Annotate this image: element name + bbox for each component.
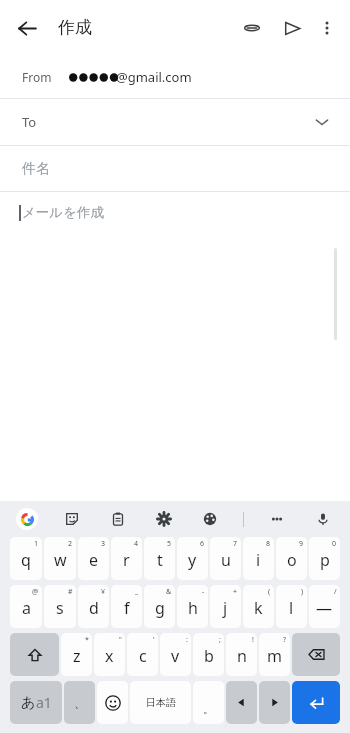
staticText: 9 (299, 539, 304, 549)
staticText: f (124, 597, 130, 619)
button[interactable]: More (264, 506, 290, 532)
staticText: " (119, 635, 122, 645)
staticText: x (105, 645, 114, 667)
staticText: 作成 (58, 17, 92, 38)
staticText: 1 (34, 539, 39, 549)
button[interactable]: a (10, 585, 42, 628)
staticText: — (316, 597, 333, 619)
button[interactable]: h (177, 585, 208, 628)
button[interactable]: メールを作成 (0, 192, 350, 501)
staticText: ? (283, 635, 287, 645)
staticText: a1 (36, 693, 52, 712)
button[interactable]: f (111, 585, 142, 628)
button[interactable]: — (309, 585, 340, 628)
staticText: o (287, 549, 297, 571)
button[interactable]: 日本語 (130, 681, 191, 724)
staticText: From (22, 69, 52, 85)
button[interactable]: y (177, 537, 208, 580)
staticText: ; (219, 635, 221, 645)
staticText: 。 (203, 702, 214, 716)
staticText: j (223, 597, 228, 619)
button[interactable]: Back (8, 9, 46, 47)
button[interactable]: Backspace (292, 633, 340, 676)
staticText: 3 (101, 539, 106, 549)
button[interactable]: z (61, 633, 92, 676)
button[interactable]: Switch input mode (10, 681, 62, 724)
staticText: - (202, 587, 205, 597)
button[interactable]: Comma (64, 681, 95, 724)
button[interactable]: Stickers (59, 506, 85, 532)
button[interactable]: Settings (151, 506, 177, 532)
staticText: 6 (200, 539, 205, 549)
button[interactable]: v (160, 633, 191, 676)
button[interactable]: Attach file (234, 10, 270, 46)
button[interactable]: Period (193, 681, 224, 724)
staticText: 5 (167, 539, 172, 549)
staticText: 、 (74, 695, 86, 710)
button[interactable]: o (276, 537, 307, 580)
button[interactable]: t (144, 537, 175, 580)
button[interactable]: w (44, 537, 76, 580)
button[interactable]: Themes (197, 506, 223, 532)
button[interactable]: Voice input (310, 506, 336, 532)
button[interactable]: Send (274, 10, 310, 46)
button[interactable]: r (111, 537, 142, 580)
button[interactable]: x (94, 633, 125, 676)
staticText: あ (21, 694, 36, 712)
staticText: ! (252, 635, 254, 645)
staticText: _ (135, 587, 139, 597)
button[interactable]: Move cursor right (259, 681, 290, 724)
button[interactable]: b (193, 633, 224, 676)
staticText: s (56, 597, 64, 619)
staticText: 2 (68, 539, 73, 549)
staticText: ' (153, 635, 155, 645)
button[interactable]: To (0, 99, 350, 145)
button[interactable]: Google (16, 508, 38, 530)
button[interactable]: q (10, 537, 42, 580)
button[interactable]: p (309, 537, 340, 580)
staticText: d (89, 597, 99, 619)
button[interactable]: e (78, 537, 109, 580)
staticText: ( (268, 587, 271, 597)
staticText: a (22, 597, 31, 619)
staticText: 7 (233, 539, 238, 549)
button[interactable]: j (210, 585, 241, 628)
staticText: / (334, 587, 337, 597)
button[interactable]: s (44, 585, 76, 628)
button[interactable]: g (144, 585, 175, 628)
staticText: p (320, 549, 330, 571)
staticText: m (267, 645, 282, 667)
staticText: c (139, 645, 147, 667)
staticText: メールを作成 (22, 204, 104, 221)
button[interactable]: i (243, 537, 274, 580)
button[interactable]: Expand recipients (308, 108, 336, 136)
staticText: @ (32, 587, 39, 597)
staticText: z (73, 645, 81, 667)
staticText: v (171, 645, 180, 667)
button[interactable]: Shift (10, 633, 59, 676)
button[interactable]: More options (310, 11, 344, 45)
staticText: 日本語 (146, 696, 176, 709)
button[interactable]: Enter (292, 681, 340, 724)
button[interactable]: d (78, 585, 109, 628)
button[interactable]: n (226, 633, 257, 676)
staticText: g (155, 597, 165, 619)
staticText: + (233, 587, 238, 597)
button[interactable]: l (276, 585, 307, 628)
button[interactable]: From (0, 55, 350, 98)
staticText: ¥ (101, 587, 106, 597)
button[interactable]: 件名 (0, 146, 350, 191)
button[interactable]: u (210, 537, 241, 580)
button[interactable]: Emoji (97, 681, 128, 724)
staticText: : (186, 635, 188, 645)
button[interactable]: Move cursor left (226, 681, 257, 724)
button[interactable]: m (259, 633, 290, 676)
staticText: 件名 (22, 160, 50, 178)
button[interactable]: Clipboard (105, 506, 131, 532)
button[interactable]: k (243, 585, 274, 628)
staticText: i (256, 549, 261, 571)
button[interactable]: c (127, 633, 158, 676)
staticText: 4 (134, 539, 139, 549)
staticText: r (123, 549, 130, 571)
staticText: * (85, 635, 89, 645)
